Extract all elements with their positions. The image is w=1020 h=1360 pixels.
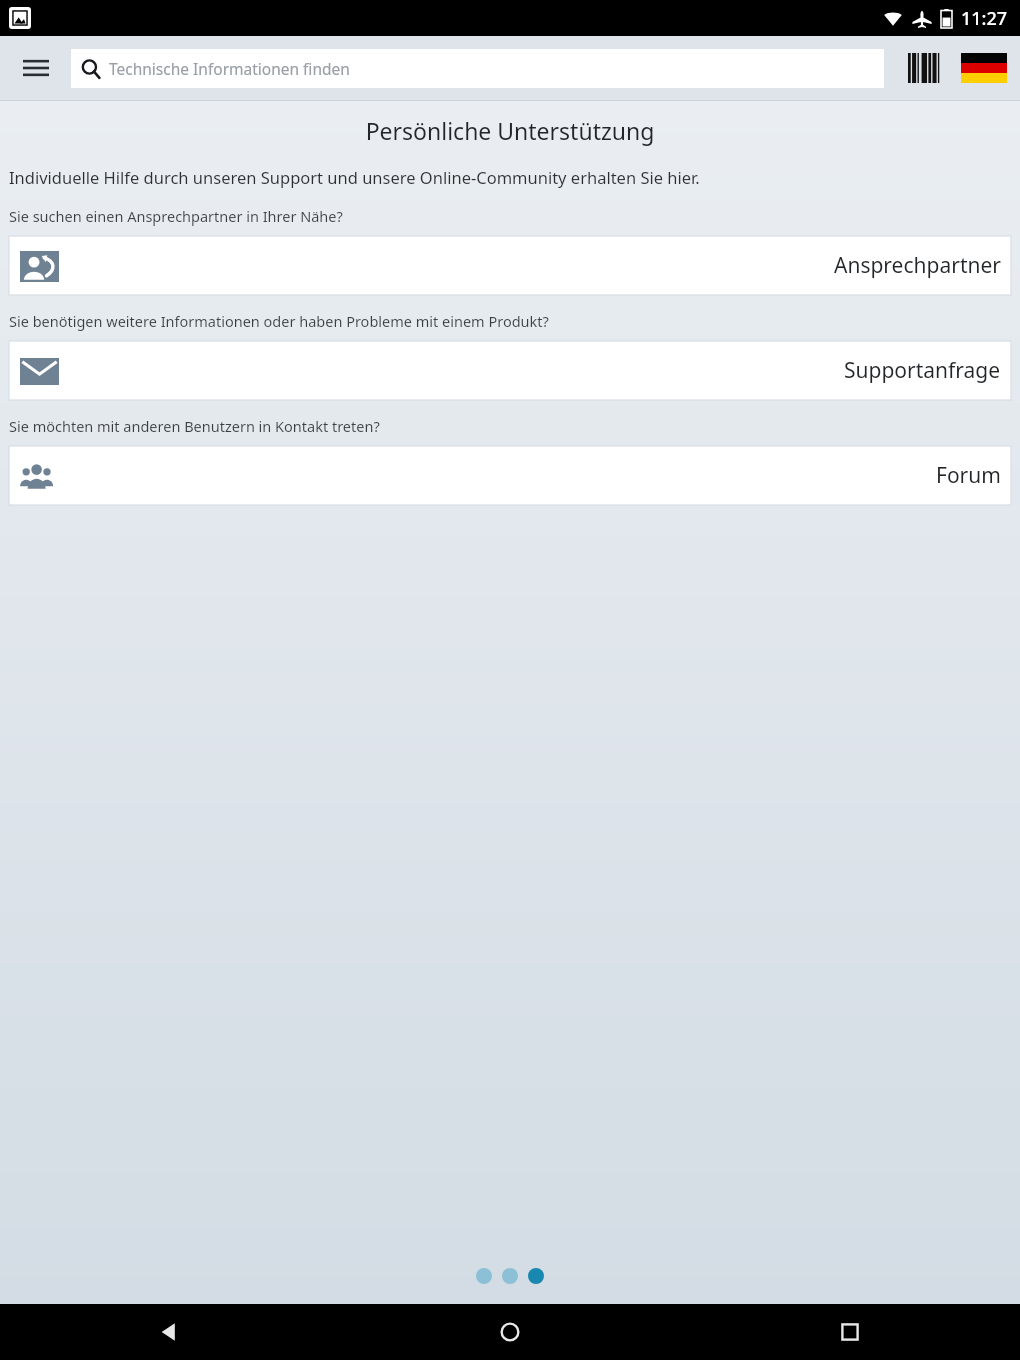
staticText: Sie suchen einen Ansprechpartner in Ihre…	[9, 206, 343, 226]
staticText: Forum	[936, 461, 1001, 490]
button[interactable]: Übersicht	[680, 1304, 1020, 1360]
button[interactable]: Forum	[9, 446, 1011, 505]
staticText: Sie benötigen weitere Informationen oder…	[9, 311, 549, 331]
button[interactable]: Ansprechpartner	[9, 236, 1011, 295]
staticText: Supportanfrage	[844, 356, 1001, 385]
staticText: Individuelle Hilfe durch unseren Support…	[9, 166, 700, 188]
button[interactable]: Startbildschirm	[340, 1304, 680, 1360]
button[interactable]	[502, 1268, 518, 1284]
button[interactable]: Sprache: Deutsch	[956, 48, 1012, 88]
button[interactable]: Supportanfrage	[9, 341, 1011, 400]
staticText: 11:27	[961, 6, 1008, 31]
staticText: Ansprechpartner	[834, 251, 1001, 280]
button[interactable]	[476, 1268, 492, 1284]
staticText: Persönliche Unterstützung	[0, 115, 1020, 146]
button[interactable]: Menü	[0, 36, 71, 100]
button[interactable]: Technische Informationen finden	[71, 49, 884, 88]
button[interactable]	[528, 1268, 544, 1284]
staticText: Sie möchten mit anderen Benutzern in Kon…	[9, 416, 380, 436]
staticText: Technische Informationen finden	[109, 58, 350, 79]
button[interactable]: Barcode scannen	[902, 48, 948, 88]
button[interactable]: Zurück	[0, 1304, 340, 1360]
